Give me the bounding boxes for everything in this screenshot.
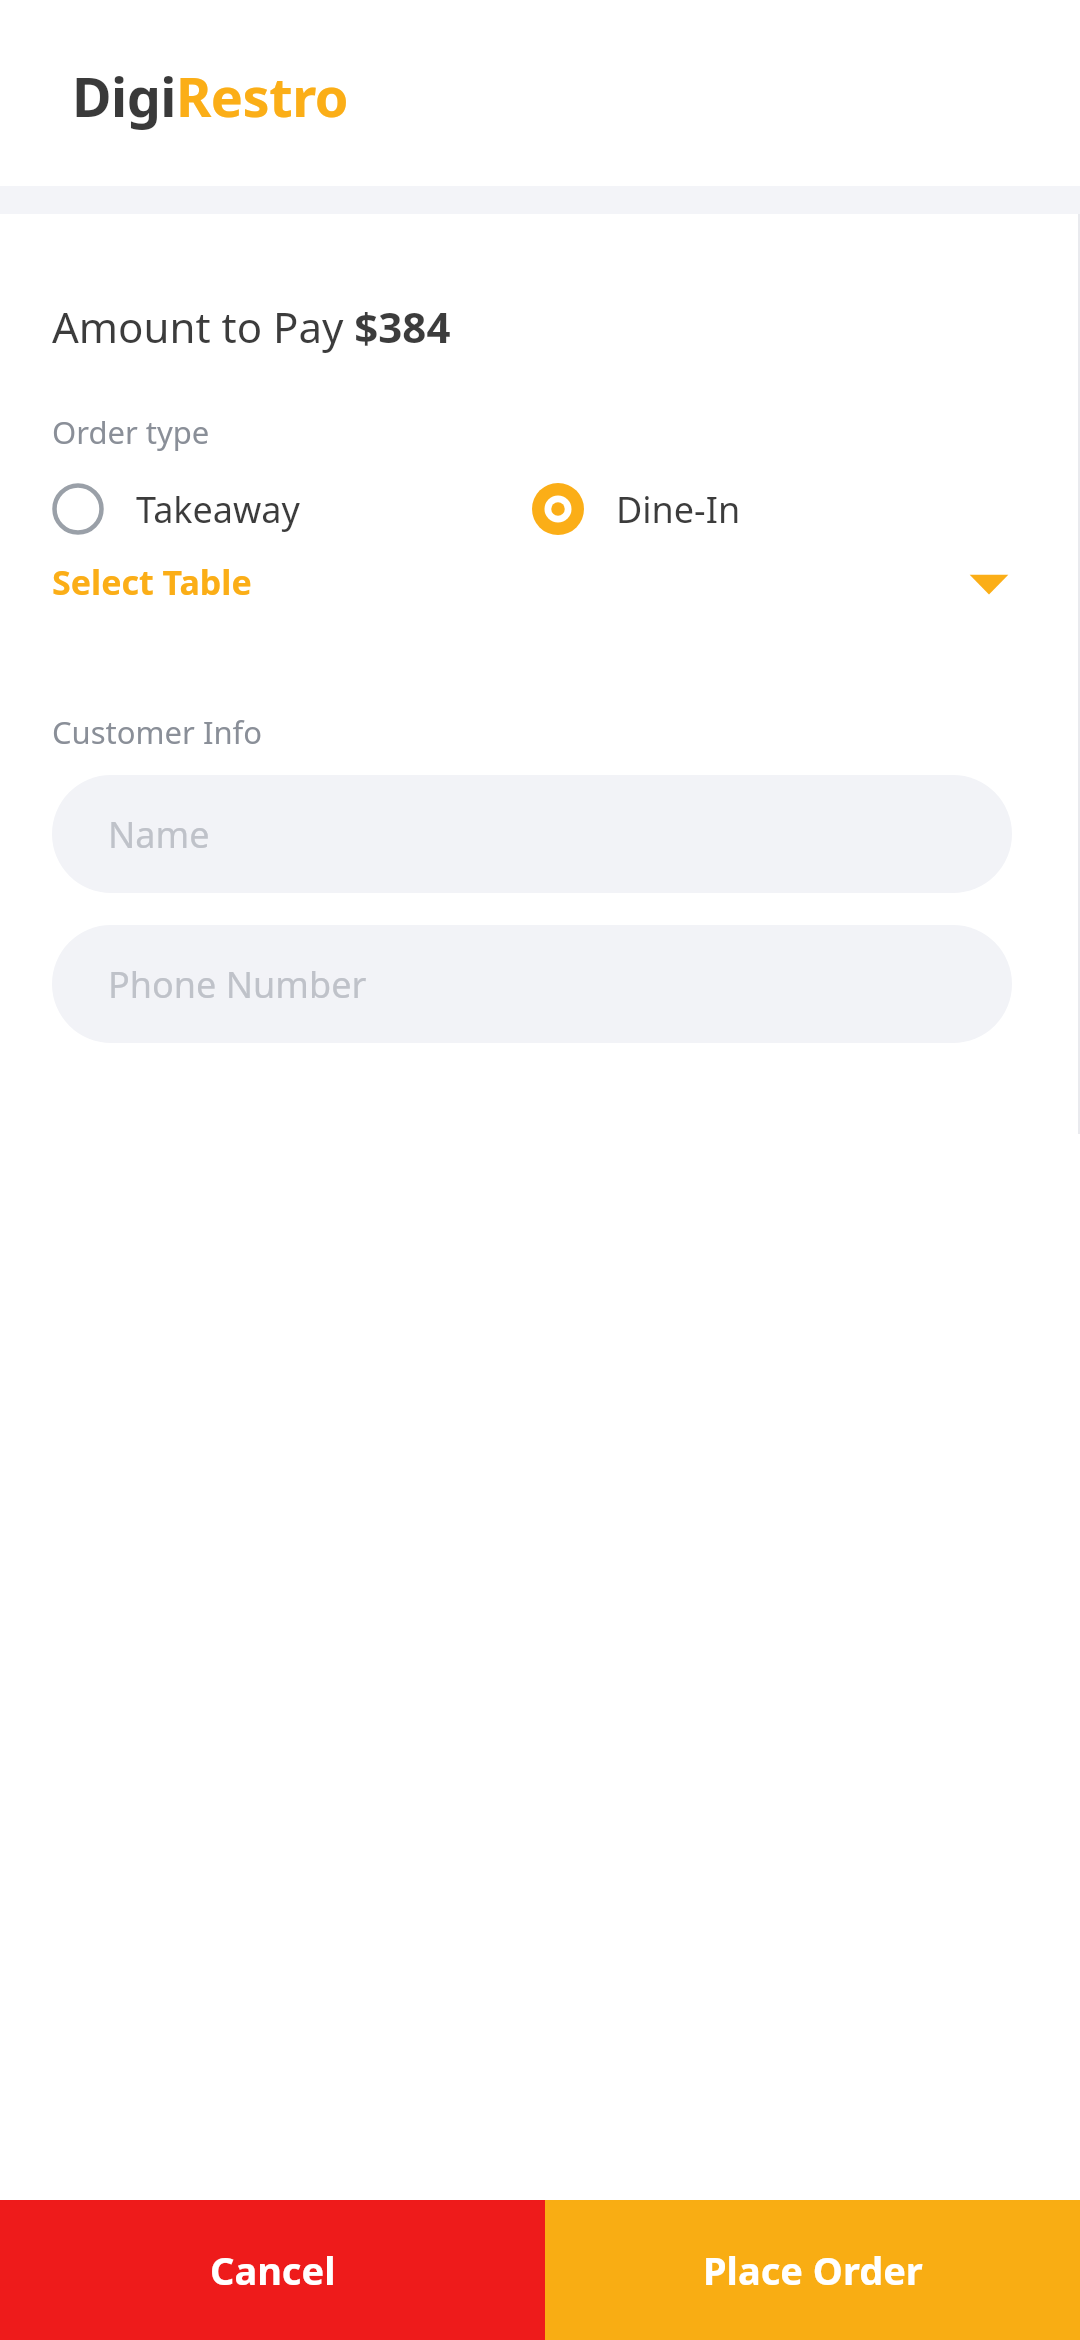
staticText: Order type bbox=[52, 411, 210, 453]
other: Select table dropdown bbox=[966, 567, 1012, 597]
button[interactable]: Dine-In bbox=[532, 483, 1012, 535]
staticText: Cancel bbox=[210, 2244, 336, 2296]
staticText: Dine-In bbox=[616, 485, 741, 534]
staticText: Amount to Pay $384 bbox=[52, 298, 451, 355]
staticText: Phone Number bbox=[108, 960, 367, 1009]
button[interactable]: Phone Number bbox=[52, 925, 1012, 1043]
button[interactable]: Name bbox=[52, 775, 1012, 893]
button[interactable]: Place Order bbox=[545, 2200, 1080, 2340]
staticText: Select Table bbox=[52, 559, 252, 605]
staticText: Name bbox=[108, 810, 210, 859]
staticText: Place Order bbox=[703, 2244, 923, 2296]
button[interactable]: Select Table bbox=[52, 559, 1012, 605]
button[interactable]: Cancel bbox=[0, 2200, 545, 2340]
staticText: Takeaway bbox=[136, 485, 300, 534]
staticText: Customer Info bbox=[52, 711, 262, 753]
staticText: DigiRestro bbox=[72, 59, 348, 133]
button[interactable]: Takeaway bbox=[52, 483, 532, 535]
